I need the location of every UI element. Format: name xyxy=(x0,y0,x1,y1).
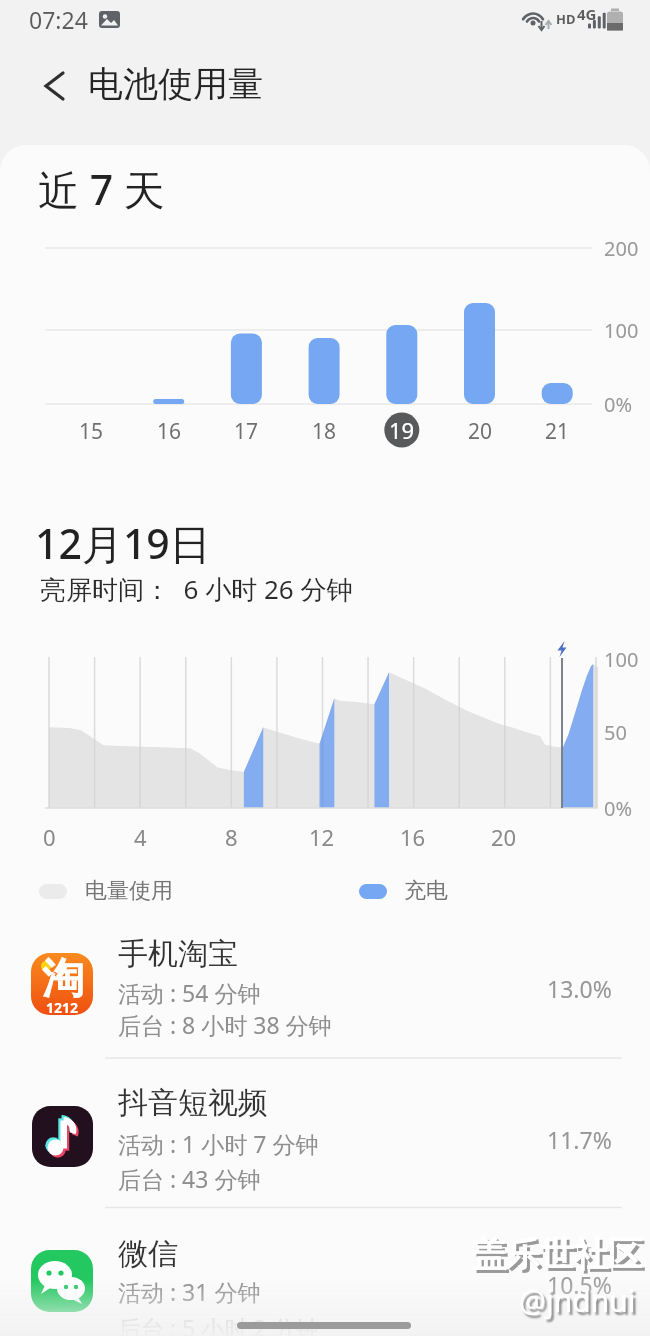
staticText: 4G xyxy=(577,4,597,24)
staticText: 19 xyxy=(389,415,415,445)
staticText: 4 xyxy=(134,822,147,852)
staticText: 活动 : 1 小时 7 分钟 xyxy=(118,1128,319,1159)
staticText: 抖音短视频 xyxy=(118,1084,268,1122)
staticText: 盖乐世社区 xyxy=(472,1233,642,1276)
staticText: 活动 : 31 分钟 xyxy=(118,1276,261,1307)
staticText: 近 7 天 xyxy=(38,161,165,217)
staticText: 微信 xyxy=(118,1235,178,1273)
button[interactable] xyxy=(28,60,82,114)
button[interactable] xyxy=(0,925,650,1058)
staticText: 200 xyxy=(604,235,639,262)
staticText: 50 xyxy=(604,719,627,746)
staticText: 21 xyxy=(545,417,570,446)
staticText: 17 xyxy=(234,417,259,446)
button[interactable] xyxy=(0,1207,650,1336)
staticText: 电量使用 xyxy=(85,877,173,905)
button[interactable] xyxy=(0,1058,650,1207)
staticText: 20 xyxy=(468,417,493,446)
staticText: 12月19日 xyxy=(35,515,211,571)
staticText: 后台 : 8 小时 38 分钟 xyxy=(118,1009,332,1040)
staticText: 盖乐世社区 xyxy=(475,1236,645,1279)
staticText: 100 xyxy=(604,646,639,673)
staticText: 后台 : 5 小时 2 分钟 xyxy=(118,1312,319,1336)
staticText: 手机淘宝 xyxy=(118,935,238,973)
staticText: 亮屏时间： 6 小时 26 分钟 xyxy=(40,571,353,607)
staticText: 07:24 xyxy=(29,4,88,35)
staticText: 100 xyxy=(604,317,639,344)
staticText: 活动 : 54 分钟 xyxy=(118,977,261,1008)
staticText: @jndnui xyxy=(519,1280,636,1321)
staticText: 0% xyxy=(604,391,633,418)
staticText: 18 xyxy=(312,417,337,446)
button[interactable] xyxy=(237,1322,411,1329)
staticText: HD xyxy=(556,10,576,28)
staticText: 13.0% xyxy=(547,973,612,1004)
staticText: 12 xyxy=(309,822,335,852)
staticText: 后台 : 43 分钟 xyxy=(118,1163,261,1194)
staticText: 充电 xyxy=(404,877,448,905)
staticText: 16 xyxy=(400,822,426,852)
staticText: 0% xyxy=(604,795,633,822)
staticText: 淘 xyxy=(42,953,84,1006)
staticText: 1212 xyxy=(46,998,79,1017)
staticText: 15 xyxy=(79,417,104,446)
staticText: 0 xyxy=(43,822,56,852)
staticText: 16 xyxy=(157,417,182,446)
staticText: 8 xyxy=(225,822,238,852)
staticText: 20 xyxy=(491,822,517,852)
staticText: 电池使用量 xyxy=(88,62,263,106)
staticText: 11.7% xyxy=(547,1124,612,1155)
staticText: 10.5% xyxy=(547,1269,612,1300)
